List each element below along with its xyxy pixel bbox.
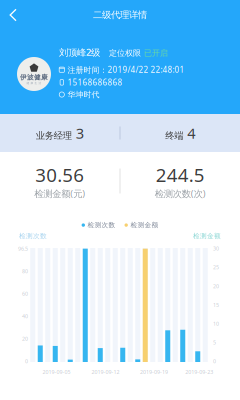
staticText: 2019-09-05 [42,368,70,376]
staticText: 检测金额(元) [34,187,85,200]
staticText: 60 [22,290,28,297]
staticText: 20 [213,283,219,290]
staticText: 2019-09-23 [185,368,213,376]
staticText: 检测次数 [19,232,47,240]
staticText: 0 [25,358,28,365]
staticText: 健 康 生 活 [26,81,41,85]
staticText: 终端 [165,130,183,141]
staticText: 15 [213,301,219,308]
staticText: 40 [22,313,28,320]
staticText: 20 [22,335,28,342]
staticText: 4 [187,123,195,143]
staticText: 检测金额 [130,221,158,229]
staticText: 检测次数 [87,221,115,229]
staticText: 华坤时代 [68,90,100,99]
staticText: 0 [213,358,216,365]
staticText: 96.5 [18,245,28,252]
staticText: 注册时间：2019/4/22 22:48:01 [68,64,185,75]
button[interactable]: 业务经理 [0,114,119,152]
staticText: 定位权限 [109,48,141,58]
staticText: 二级代理详情 [93,9,147,21]
staticText: 刘顶峰2级 [59,46,100,58]
staticText: 10 [213,320,219,327]
staticText: 业务经理 [36,130,72,141]
staticText: 检测次数(次) [155,187,206,200]
staticText: 检测金额 [193,232,221,240]
staticText: 25 [213,264,219,271]
staticText: 伊波健康 [20,73,48,81]
staticText: 2019-09-12 [91,368,119,376]
staticText: 5 [213,339,216,346]
button[interactable]: 终端 [120,114,240,152]
staticText: 30.56 [35,162,84,187]
staticText: 80 [22,268,28,275]
staticText: 30 [213,245,219,252]
staticText: 2019-09-19 [140,368,168,376]
button[interactable]: Back [0,0,27,29]
staticText: 15168686868 [68,77,123,88]
staticText: 已开启 [144,48,168,58]
staticText: 244.5 [156,162,205,187]
staticText: 3 [76,123,84,143]
